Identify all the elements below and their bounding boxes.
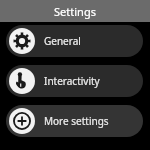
staticText: Settings bbox=[54, 4, 96, 19]
staticText: General bbox=[44, 34, 81, 48]
staticText: Interactivity bbox=[44, 74, 100, 88]
staticText: More settings bbox=[44, 114, 109, 128]
button[interactable]: More settings bbox=[6, 105, 143, 137]
button[interactable]: General bbox=[6, 25, 143, 57]
button[interactable]: Interactivity bbox=[6, 65, 143, 97]
